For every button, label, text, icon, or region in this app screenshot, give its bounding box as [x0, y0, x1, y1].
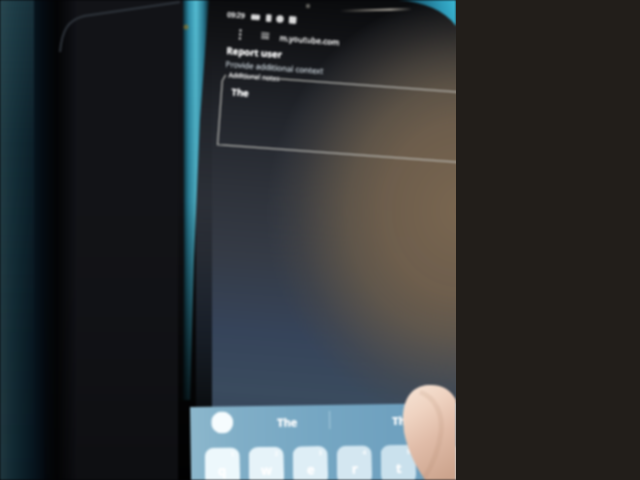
button[interactable]: More options [232, 26, 247, 41]
button[interactable]: e [293, 446, 328, 480]
staticText: e [307, 460, 315, 478]
staticText: The [231, 85, 250, 100]
staticText: q [218, 461, 227, 480]
staticText: r [352, 459, 358, 478]
button[interactable]: The [277, 414, 298, 430]
staticText: Additional notes [228, 70, 280, 83]
staticText: 4 [363, 448, 367, 456]
button[interactable]: t [381, 445, 416, 480]
staticText: w [261, 461, 273, 479]
staticText: 3 [319, 449, 323, 457]
staticText: t [396, 459, 402, 477]
button[interactable]: Th [392, 413, 406, 428]
button[interactable]: Voice input [211, 411, 233, 434]
button[interactable]: Site information [258, 29, 271, 42]
button[interactable]: r [337, 445, 372, 480]
button[interactable]: w [249, 447, 284, 480]
staticText: Th [392, 413, 406, 428]
staticText: m.youtube.com [279, 32, 341, 47]
button[interactable]: y [425, 444, 460, 480]
button[interactable]: Additional notes text field [214, 71, 469, 166]
staticText: 09:29 [227, 10, 245, 21]
staticText: Report user [226, 44, 283, 61]
staticText: Provide additional context [225, 58, 325, 76]
button[interactable]: q [205, 447, 240, 480]
staticText: 5 [407, 448, 411, 456]
staticText: The [277, 414, 298, 430]
